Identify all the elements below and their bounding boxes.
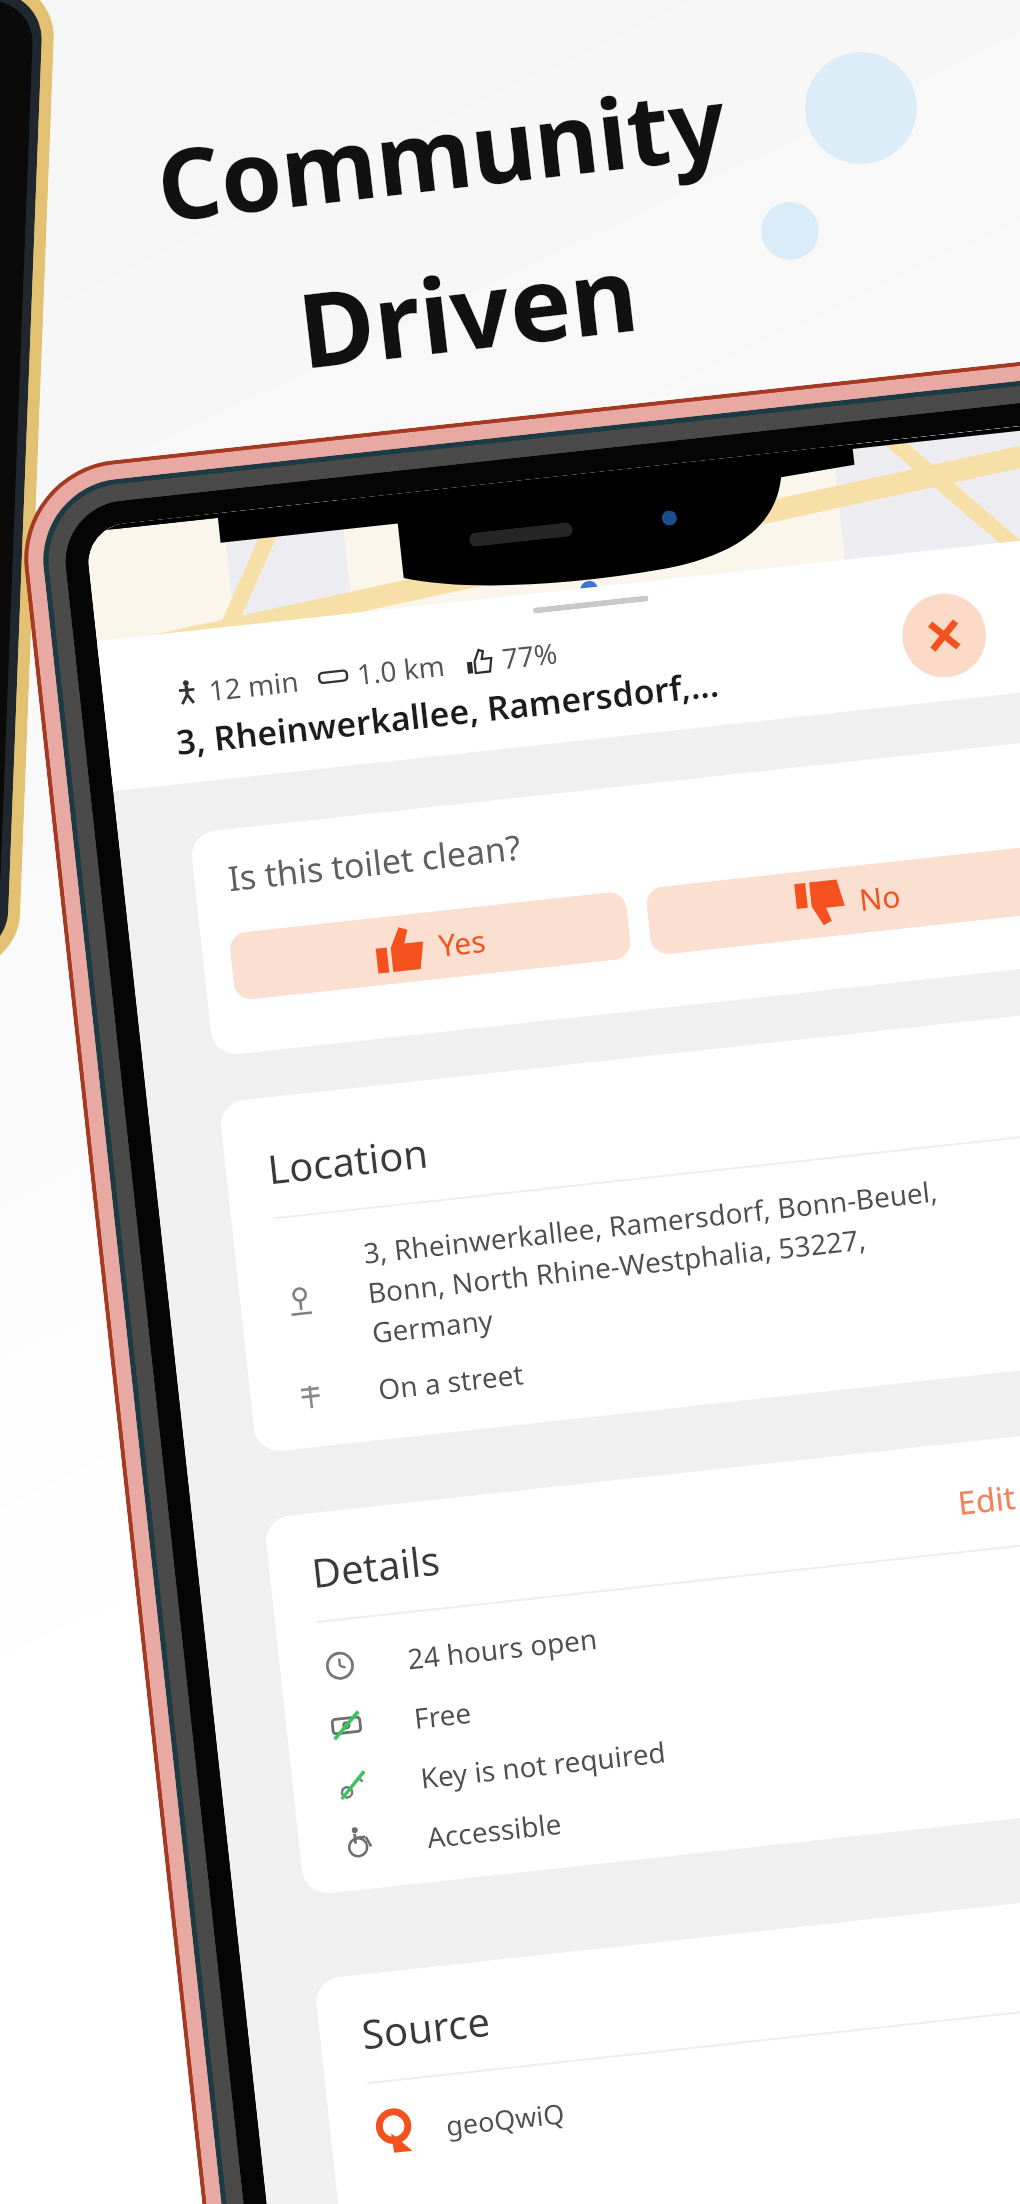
button[interactable]: No: [645, 845, 1020, 956]
staticText: Is this toilet clean?: [226, 824, 523, 901]
staticText: Source: [359, 1993, 493, 2060]
staticText: Free: [412, 1693, 474, 1737]
staticText: On a street: [376, 1354, 525, 1408]
staticText: Accessible: [425, 1804, 563, 1850]
staticText: 3, Rheinwerkallee, Ramersdorf,...: [174, 660, 721, 765]
staticText: Yes: [436, 920, 488, 966]
staticText: 12 min: [207, 661, 301, 709]
button[interactable]: Edit: [956, 1475, 1018, 1525]
staticText: Location: [265, 1124, 431, 1195]
staticText: Edit: [956, 1475, 1018, 1525]
staticText: Driven: [291, 221, 645, 399]
staticText: Community: [150, 52, 732, 250]
button[interactable]: Yes: [228, 890, 632, 1001]
staticText: No: [857, 875, 902, 920]
button[interactable]: Close: [898, 589, 990, 682]
staticText: 77%: [500, 633, 560, 677]
staticText: Details: [309, 1531, 443, 1599]
staticText: 24 hours open: [405, 1619, 599, 1677]
staticText: 3, Rheinwerkallee, Ramersdorf, Bonn-Beue…: [361, 1168, 981, 1352]
staticText: Key is not required: [418, 1732, 668, 1797]
staticText: 1.0 km: [355, 646, 446, 693]
staticText: geoQwiQ: [444, 2094, 566, 2144]
